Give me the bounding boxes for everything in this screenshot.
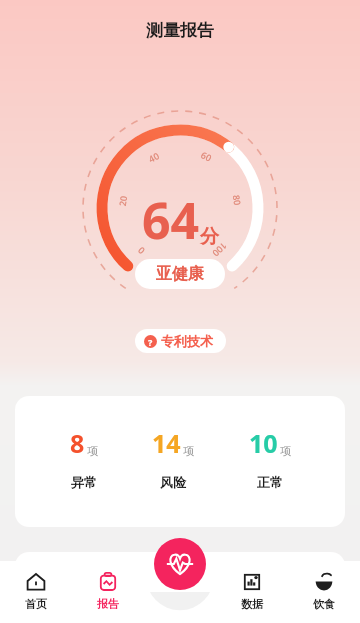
staticText: 测量报告 [146, 20, 214, 41]
staticText: 64 [142, 186, 200, 254]
staticText: 项 [280, 444, 291, 458]
staticText: 报告 [97, 597, 119, 611]
staticText: 20 [116, 195, 129, 207]
staticText: 0 [135, 244, 147, 257]
staticText: 亚健康 [156, 264, 204, 284]
staticText: ? [148, 336, 153, 348]
staticText: 正常 [257, 474, 283, 490]
button[interactable]: Start measurement [154, 538, 206, 590]
button[interactable]: ? [135, 329, 226, 353]
staticText: 风险 [160, 474, 186, 490]
staticText: 分 [200, 225, 219, 249]
button[interactable]: 首页 [0, 561, 72, 623]
staticText: 10 [249, 426, 278, 460]
button[interactable]: 报告 [72, 561, 144, 623]
staticText: 首页 [25, 597, 47, 611]
staticText: 饮食 [313, 597, 335, 611]
staticText: 异常 [71, 474, 97, 490]
button[interactable]: 饮食 [288, 561, 360, 623]
staticText: 项 [183, 444, 194, 458]
button[interactable]: 亚健康 [135, 259, 225, 289]
staticText: 60 [199, 148, 214, 164]
staticText: 数据 [241, 597, 263, 611]
button[interactable]: 数据 [216, 561, 288, 623]
staticText: 14 [152, 426, 181, 460]
staticText: 40 [146, 149, 161, 165]
staticText: 专利技术 [161, 333, 213, 349]
staticText: 项 [87, 444, 98, 458]
staticText: 80 [231, 194, 244, 206]
staticText: 8 [70, 426, 85, 460]
staticText: 100 [210, 240, 230, 260]
